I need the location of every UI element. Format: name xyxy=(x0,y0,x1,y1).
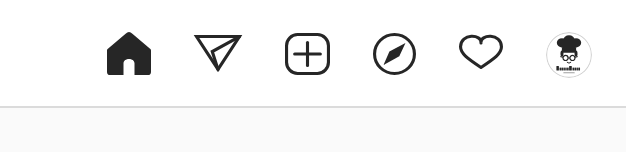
button[interactable]: New post xyxy=(264,11,350,97)
button[interactable]: Home xyxy=(86,10,172,96)
button[interactable]: Profile xyxy=(526,12,612,98)
button[interactable]: Explore xyxy=(351,11,437,97)
button[interactable]: Activity xyxy=(438,9,524,95)
button[interactable]: Direct messages xyxy=(175,10,261,96)
